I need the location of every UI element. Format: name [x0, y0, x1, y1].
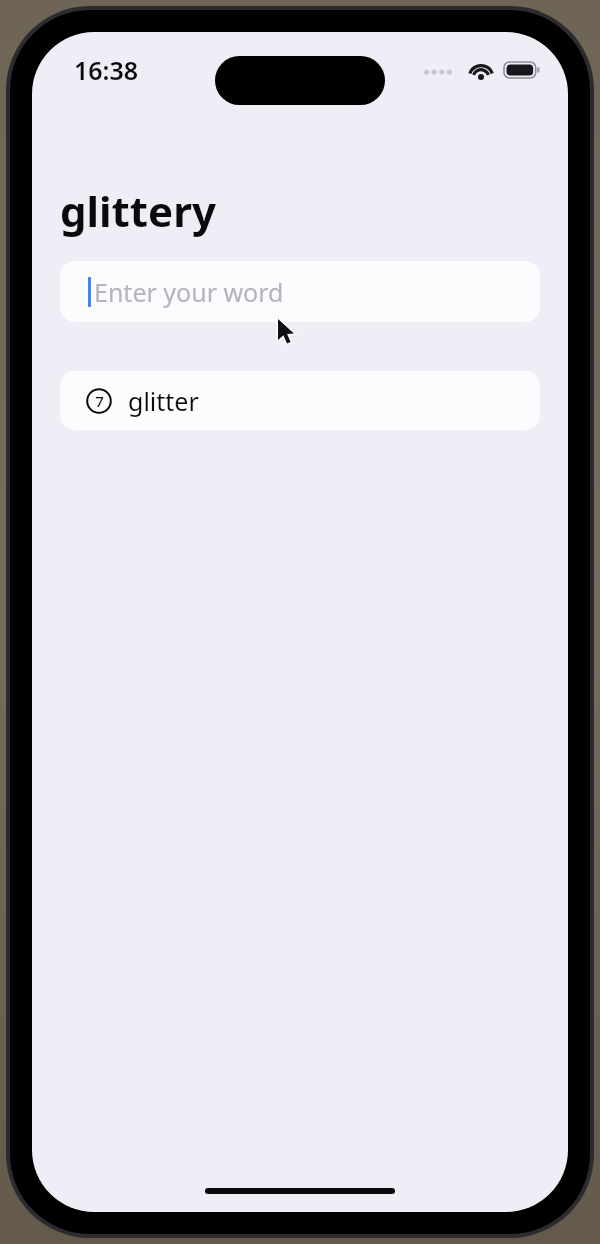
staticText: 16:38 — [74, 53, 139, 87]
button[interactable]: Enter your word — [60, 261, 540, 322]
staticText: Enter your word — [94, 275, 284, 309]
staticText: glittery — [60, 182, 216, 239]
staticText: 7 — [95, 391, 104, 411]
button[interactable]: 7 — [60, 371, 540, 430]
staticText: glitter — [128, 384, 199, 418]
